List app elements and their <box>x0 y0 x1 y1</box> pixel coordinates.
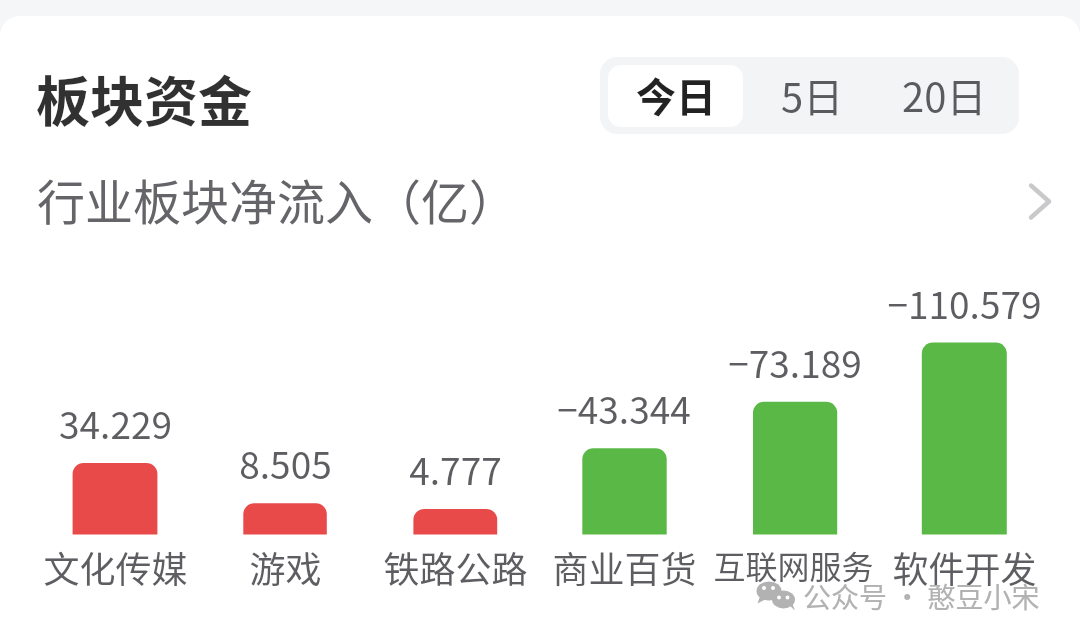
staticText: 20日 <box>902 66 987 124</box>
staticText: 4.777 <box>409 442 502 494</box>
staticText: 5日 <box>781 66 844 124</box>
staticText: 板块资金 <box>36 59 252 137</box>
staticText: 商业百货 <box>552 541 697 589</box>
button[interactable]: 互联网服务 <box>643 541 943 589</box>
staticText: 游戏 <box>249 541 322 589</box>
staticText: 文化传媒 <box>43 541 188 589</box>
button[interactable]: 铁路公路 <box>305 541 605 589</box>
staticText: −43.344 <box>557 381 691 433</box>
other: More sector capital detail <box>1017 173 1063 219</box>
staticText: 软件开发 <box>892 541 1037 589</box>
staticText: 8.505 <box>239 436 332 488</box>
button[interactable]: 文化传媒 <box>0 541 265 589</box>
button[interactable]: 今日 <box>608 65 743 127</box>
staticText: 互联网服务 <box>713 542 874 588</box>
staticText: −110.579 <box>887 276 1042 328</box>
button[interactable]: 软件开发 <box>814 541 1080 589</box>
staticText: 34.229 <box>59 396 172 448</box>
staticText: 铁路公路 <box>383 541 528 589</box>
staticText: 公众号 · 憨豆小宋 <box>803 576 1040 617</box>
staticText: −73.189 <box>728 335 862 387</box>
staticText: 行业板块净流入（亿） <box>37 164 518 228</box>
staticText: 今日 <box>636 66 716 124</box>
button[interactable]: 5日 <box>745 65 879 127</box>
button[interactable]: 游戏 <box>135 541 435 589</box>
button[interactable]: 20日 <box>877 65 1012 127</box>
button[interactable]: 商业百货 <box>474 541 774 589</box>
button[interactable]: 行业板块净流入（亿） <box>0 164 1080 228</box>
